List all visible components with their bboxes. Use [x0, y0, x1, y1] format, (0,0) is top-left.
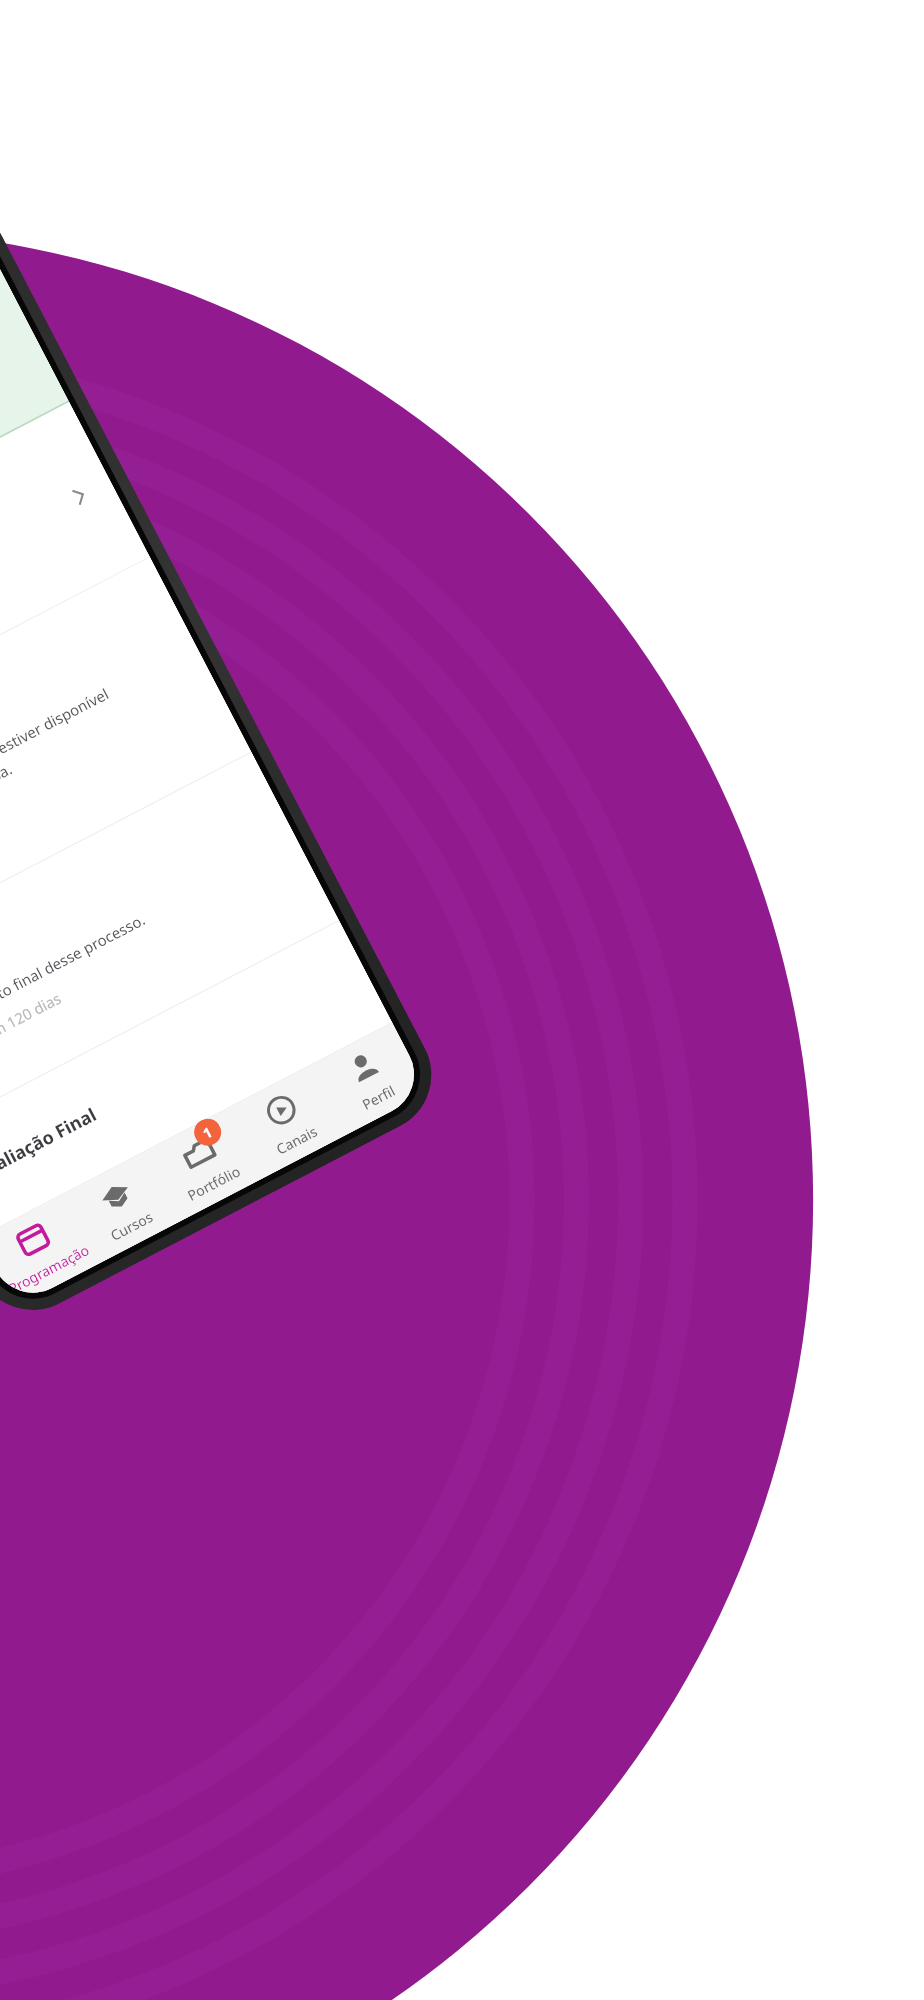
- button[interactable]: Etapa concluída: [0, 249, 68, 615]
- staticText: Disponível quando o feedback estiver dis…: [0, 683, 123, 878]
- staticText: Encerrará em 120 dias: [0, 988, 64, 1078]
- button[interactable]: Cursos: [63, 1152, 181, 1264]
- staticText: Perfil: [359, 1081, 399, 1114]
- button[interactable]: Canais: [228, 1066, 346, 1178]
- staticText: Programação: [5, 1240, 93, 1298]
- staticText: Avaliação Final: [0, 1102, 101, 1186]
- staticText: Canais: [273, 1121, 321, 1158]
- button[interactable]: Projeto Final: [0, 752, 339, 1136]
- button[interactable]: Avaliação Final: [0, 921, 393, 1238]
- staticText: Realize o projeto final desse processo.: [0, 909, 149, 1050]
- button[interactable]: Perfil: [310, 1023, 429, 1135]
- button[interactable]: Programação: [0, 1195, 99, 1307]
- button[interactable]: Encontro ao vivo: [0, 402, 150, 772]
- button[interactable]: Atividade avaliativa: [0, 557, 252, 968]
- staticText: Portfólio: [184, 1161, 243, 1205]
- staticText: 1: [199, 1122, 216, 1143]
- staticText: Cursos: [107, 1207, 157, 1245]
- button[interactable]: Portfólio: [145, 1109, 264, 1221]
